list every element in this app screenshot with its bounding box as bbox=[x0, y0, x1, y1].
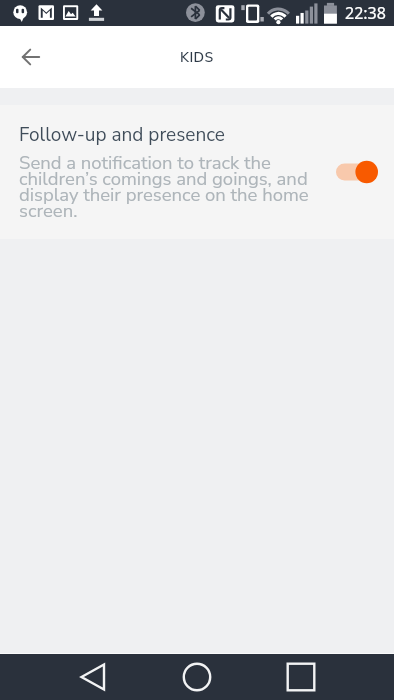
staticText: Send a notification to track the childre… bbox=[19, 150, 321, 224]
button[interactable]: Back bbox=[7, 33, 55, 81]
button[interactable]: Back bbox=[0, 654, 132, 700]
button[interactable]: Toggle follow-up and presence bbox=[336, 155, 378, 189]
button[interactable]: Home bbox=[132, 654, 263, 700]
staticText: KIDS bbox=[180, 48, 214, 67]
staticText: Follow-up and presence bbox=[19, 122, 225, 148]
button[interactable]: Recent apps bbox=[263, 654, 394, 700]
staticText: 22:38 bbox=[345, 2, 386, 24]
